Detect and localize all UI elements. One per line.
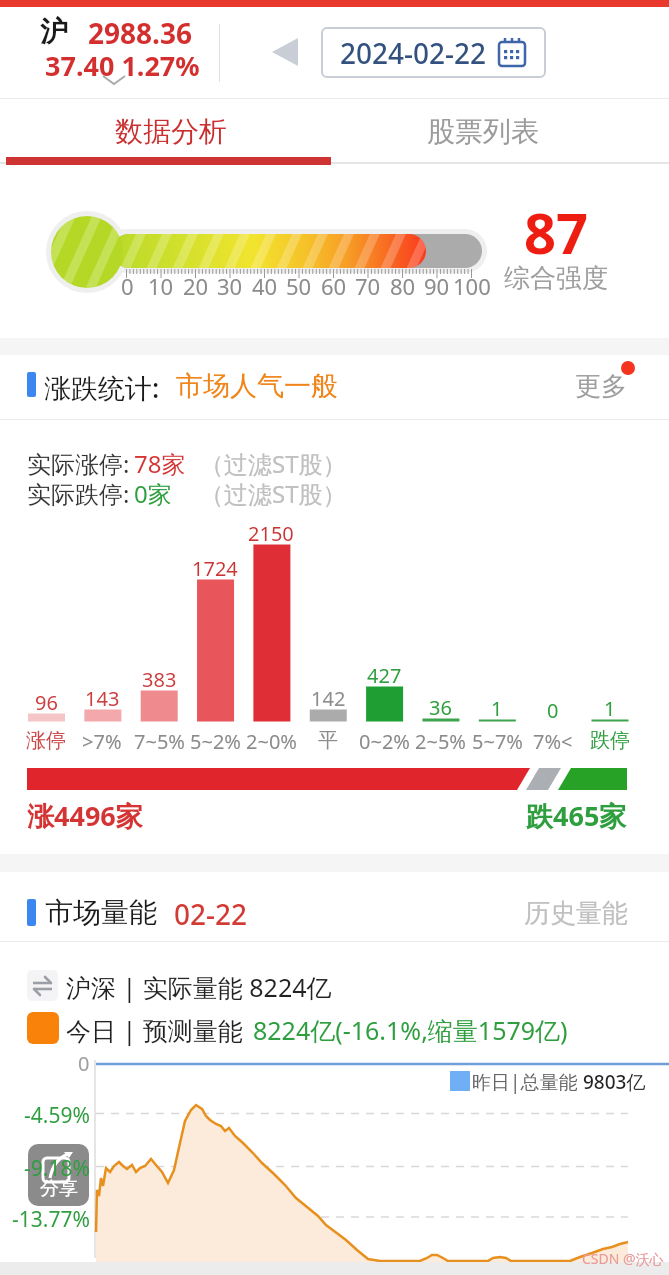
staticText: 昨日|总量能 [472, 1069, 583, 1095]
staticText: 综合强度 [504, 262, 608, 295]
button[interactable] [30, 10, 230, 95]
staticText: 02-22 [174, 895, 248, 933]
staticText: 2~0% [246, 728, 297, 755]
staticText: 87 [524, 194, 589, 270]
staticText: 跌465家 [526, 797, 627, 834]
staticText: 1 [491, 695, 503, 722]
staticText: 股票列表 [427, 114, 539, 149]
staticText: 2024-02-22 [340, 34, 487, 72]
staticText: 142 [311, 685, 346, 712]
staticText: 0 [78, 1050, 90, 1077]
staticText: 9803亿 [583, 1069, 646, 1095]
staticText: 96 [35, 689, 58, 716]
staticText: （过滤ST股） [200, 477, 347, 510]
staticText: 跌停 [590, 728, 630, 753]
staticText: 60 [321, 271, 347, 301]
staticText: 沪深 | 实际量能 8224亿 [66, 970, 332, 1004]
staticText: 市场人气一般 [176, 369, 338, 403]
staticText: 5~2% [190, 728, 241, 755]
staticText: 20 [183, 271, 209, 301]
staticText: 涨停 [26, 728, 66, 753]
staticText: 78家 [134, 447, 186, 480]
staticText: 8224亿(-16.1%,缩量1579亿) [253, 1013, 568, 1047]
staticText: 2~5% [415, 728, 466, 755]
staticText: 分享 [40, 1177, 78, 1201]
staticText: >7% [82, 728, 122, 755]
staticText: 427 [367, 662, 402, 689]
staticText: 5~7% [472, 728, 523, 755]
button[interactable] [268, 36, 300, 68]
staticText: -9.18% [24, 1154, 90, 1183]
staticText: 50 [286, 271, 312, 301]
button[interactable] [334, 99, 669, 164]
staticText: 实际跌停: [27, 477, 130, 510]
staticText: 2150 [248, 520, 294, 547]
staticText: -13.77% [12, 1205, 90, 1234]
button[interactable]: 分享 [28, 1144, 89, 1206]
staticText: 0 [121, 271, 134, 301]
button[interactable] [0, 355, 669, 419]
button[interactable]: 2024-02-22 [322, 28, 545, 77]
staticText: 100 [453, 271, 491, 301]
staticText: 90 [424, 271, 450, 301]
staticText: 1724 [192, 555, 238, 582]
staticText: 1 [604, 695, 616, 722]
button[interactable] [0, 872, 669, 940]
staticText: CSDN @沃心 [582, 1249, 664, 1268]
staticText: 历史量能 [524, 897, 628, 930]
staticText: 143 [85, 685, 120, 712]
staticText: 沪 [40, 14, 68, 49]
staticText: -4.59% [24, 1101, 90, 1130]
staticText: 0家 [134, 477, 172, 510]
staticText: 实际涨停: [27, 447, 130, 480]
staticText: 7%< [533, 728, 573, 755]
staticText: 0 [547, 697, 559, 724]
staticText: 数据分析 [115, 114, 227, 149]
staticText: 0~2% [359, 728, 410, 755]
staticText: 37.40 1.27% [45, 47, 200, 84]
staticText: 7~5% [134, 728, 185, 755]
staticText: （过滤ST股） [200, 447, 347, 480]
staticText: 涨4496家 [27, 797, 143, 834]
staticText: 80 [390, 271, 416, 301]
staticText: 36 [429, 694, 452, 721]
staticText: 2988.36 [88, 14, 192, 52]
staticText: 40 [252, 271, 278, 301]
staticText: 平 [318, 728, 338, 753]
button[interactable] [0, 99, 334, 164]
staticText: 今日 | 预测量能 [66, 1013, 250, 1047]
staticText: 383 [142, 666, 177, 693]
staticText: 10 [148, 271, 174, 301]
staticText: 更多 [575, 370, 627, 403]
staticText: 30 [217, 271, 243, 301]
staticText: 涨跌统计: [44, 369, 160, 406]
staticText: 市场量能 [45, 895, 157, 930]
staticText: 70 [355, 271, 381, 301]
